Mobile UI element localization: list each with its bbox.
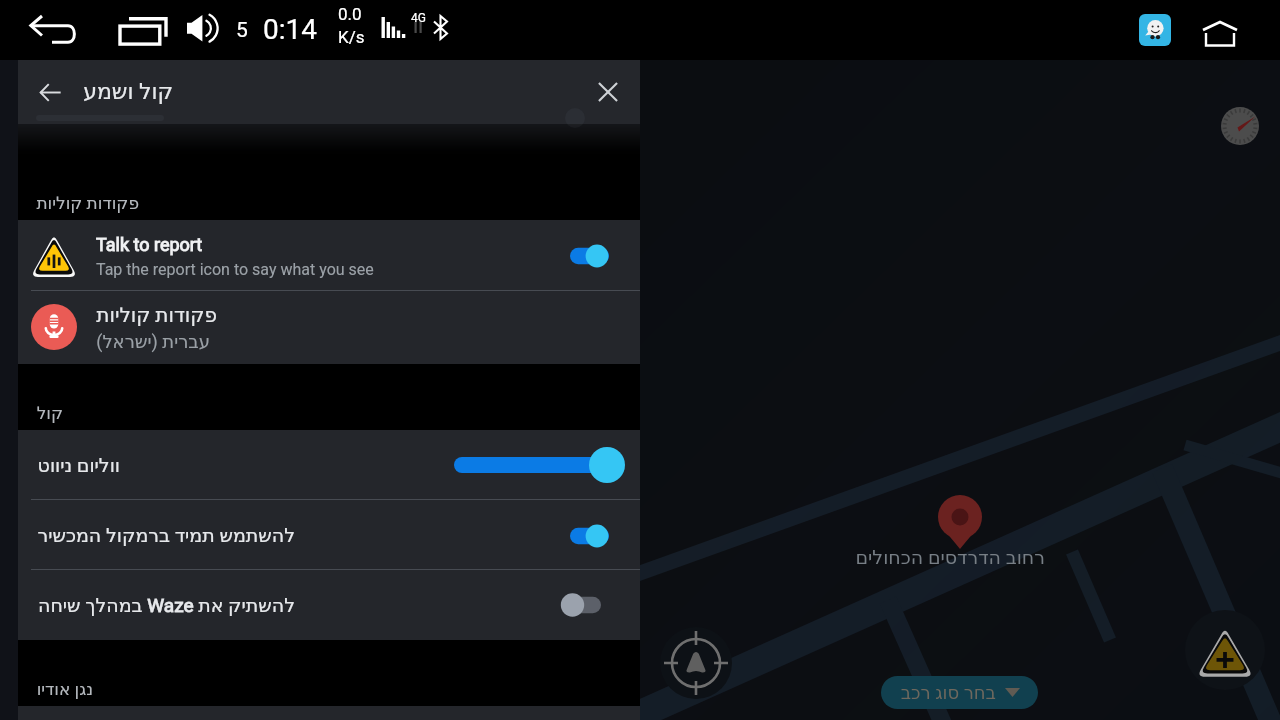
staticText: להשתמש תמיד ברמקול המכשיר: [37, 524, 295, 546]
button[interactable]: Volume: [185, 12, 221, 44]
staticText: Tap the report icon to say what you see: [96, 260, 374, 279]
button[interactable]: להשתמש תמיד ברמקול המכשיר: [18, 500, 640, 570]
staticText: פקודות קוליות: [36, 193, 139, 213]
button[interactable]: Waze: [1139, 14, 1171, 46]
button[interactable]: Navigation volume: [448, 441, 648, 489]
staticText: ווליום ניווט: [37, 454, 120, 476]
button[interactable]: Back: [30, 72, 70, 112]
staticText: 4G: [411, 11, 426, 25]
button[interactable]: Report: [1185, 610, 1265, 690]
button[interactable]: Recenter map: [660, 627, 732, 699]
staticText: 5: [236, 18, 248, 43]
staticText: קול: [36, 403, 63, 423]
button[interactable]: ווליום ניווט: [18, 430, 640, 500]
button[interactable]: Close: [588, 72, 628, 112]
button[interactable]: Enabled: [569, 515, 639, 557]
button[interactable]: Disabled: [558, 584, 628, 626]
staticText: פקודות קוליות: [96, 303, 217, 326]
staticText: K/s: [338, 27, 365, 47]
staticText: 0.0: [338, 4, 362, 24]
button[interactable]: פקודות קוליות: [18, 291, 640, 364]
button[interactable]: Back: [19, 6, 87, 54]
staticText: רחוב הדרדסים הכחולים: [855, 546, 1045, 568]
button[interactable]: Speedometer: [1218, 104, 1262, 148]
staticText: קול ושמע: [83, 79, 173, 105]
button[interactable]: Recent apps: [109, 6, 177, 54]
staticText: Talk to report: [96, 234, 203, 255]
staticText: נגן אודיו: [36, 679, 93, 699]
staticText: עברית (ישראל): [96, 331, 210, 352]
button[interactable]: Enabled: [569, 235, 639, 277]
staticText: בחר סוג רכב: [900, 682, 996, 703]
staticText: להשתיק את Waze במהלך שיחה: [37, 594, 295, 616]
button[interactable]: Home: [1194, 8, 1246, 60]
button[interactable]: Talk to report: [18, 220, 640, 291]
staticText: 0:14: [263, 13, 317, 46]
button[interactable]: בחר סוג רכב: [881, 676, 1038, 709]
button[interactable]: להשתיק את Waze במהלך שיחה: [18, 570, 640, 640]
